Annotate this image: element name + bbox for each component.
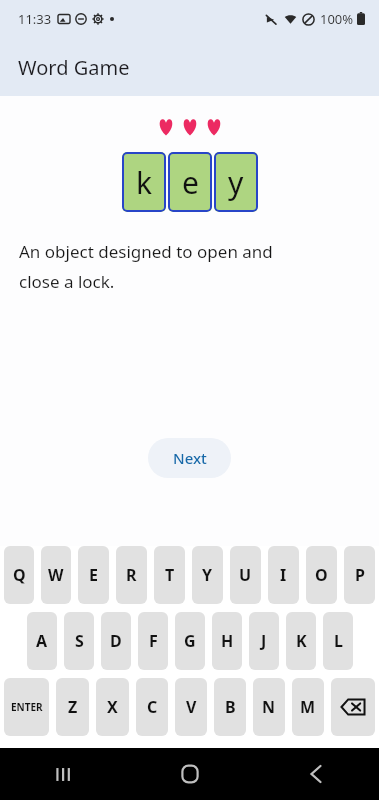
button[interactable]: y [214,152,258,212]
staticText: 100% [320,10,354,28]
button[interactable]: k [122,152,166,212]
staticText: B [225,696,236,718]
staticText: H [221,630,234,652]
staticText: E [89,564,98,586]
button[interactable]: V [175,678,207,736]
button[interactable]: J [249,612,279,670]
staticText: Y [202,564,213,586]
button[interactable]: H [212,612,242,670]
button[interactable]: Y [192,546,223,604]
staticText: W [48,564,64,586]
button[interactable]: Home [127,748,253,800]
button[interactable]: B [214,678,246,736]
button[interactable]: N [253,678,285,736]
staticText: An object designed to open and [19,240,273,263]
button[interactable]: E [78,546,109,604]
button[interactable]: A [27,612,57,670]
staticText: V [186,696,197,718]
staticText: N [262,696,276,718]
staticText: P [355,564,365,586]
button[interactable]: ENTER [4,678,49,736]
staticText: ENTER [11,700,43,714]
staticText: Q [13,564,26,586]
staticText: K [296,630,307,652]
staticText: Z [68,696,78,718]
staticText: M [300,696,316,718]
staticText: e [182,162,199,203]
button[interactable]: Q [4,546,34,604]
staticText: k [136,162,153,203]
button[interactable]: S [64,612,94,670]
button[interactable]: D [101,612,131,670]
staticText: L [334,630,343,652]
staticText: I [280,564,287,586]
staticText: D [110,630,122,652]
staticText: F [149,630,158,652]
button[interactable]: Next [148,438,231,478]
button[interactable]: Back [253,748,379,800]
staticText: O [315,564,328,586]
staticText: y [228,162,244,203]
button[interactable]: e [168,152,212,212]
staticText: U [239,564,252,586]
button[interactable]: X [96,678,129,736]
staticText: A [36,630,48,652]
button[interactable]: C [136,678,168,736]
staticText: X [107,696,118,718]
button[interactable]: I [268,546,299,604]
button[interactable]: Backspace [331,678,375,736]
staticText: close a lock. [19,270,115,293]
staticText: T [165,564,175,586]
staticText: Next [173,448,207,468]
button[interactable]: F [138,612,168,670]
staticText: G [184,630,196,652]
staticText: C [147,696,158,718]
button[interactable]: P [344,546,375,604]
staticText: J [261,630,267,652]
staticText: Word Game [18,54,130,81]
staticText: S [75,630,84,652]
button[interactable]: L [323,612,353,670]
button[interactable]: G [175,612,205,670]
button[interactable]: Z [56,678,89,736]
button[interactable]: O [306,546,337,604]
button[interactable]: T [154,546,185,604]
staticText: 11:33 [18,10,52,28]
button[interactable]: K [286,612,316,670]
staticText: R [126,564,137,586]
button[interactable]: W [41,546,71,604]
button[interactable]: U [230,546,261,604]
button[interactable]: Recent apps [0,748,127,800]
button[interactable]: M [292,678,324,736]
button[interactable]: R [116,546,147,604]
